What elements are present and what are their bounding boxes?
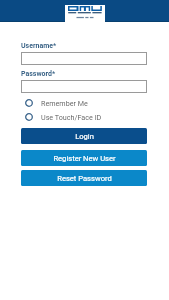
staticText: Login: [75, 132, 94, 141]
button[interactable]: Text field: [21, 80, 147, 93]
staticText: Username*: [21, 42, 57, 50]
staticText: Password*: [21, 70, 56, 78]
staticText: Register New User: [53, 154, 116, 163]
button[interactable]: Register New User: [21, 150, 147, 166]
button[interactable]: Reset Password: [21, 170, 147, 186]
staticText: Reset Password: [57, 174, 112, 183]
button[interactable]: Remember Me: [21, 99, 147, 107]
staticText: Use Touch/Face ID: [41, 113, 102, 121]
button[interactable]: Text field: [21, 52, 147, 65]
button[interactable]: Use Touch/Face ID: [21, 113, 147, 121]
button[interactable]: Login: [21, 128, 147, 144]
staticText: Remember Me: [41, 99, 88, 107]
